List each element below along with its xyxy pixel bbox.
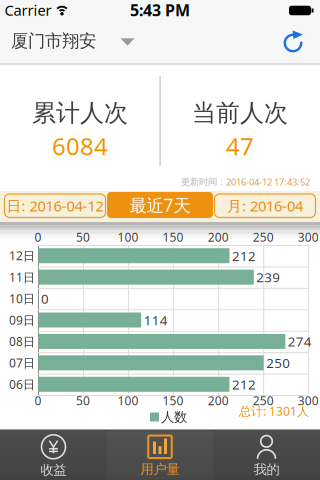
staticText: 0	[34, 229, 41, 245]
staticText: 月: 2016-04	[227, 196, 303, 215]
button[interactable]: 最近7天	[107, 189, 213, 220]
button[interactable]: 收益	[0, 431, 106, 480]
staticText: 2016-04-12 17:43:52	[226, 176, 310, 188]
staticText: 200	[208, 392, 229, 408]
staticText: 150	[163, 229, 184, 245]
staticText: 200	[208, 229, 229, 245]
staticText: 212	[232, 375, 256, 393]
staticText: 150	[163, 392, 184, 408]
staticText: 0	[41, 290, 49, 307]
button[interactable]: 厦门市翔安	[12, 20, 144, 62]
staticText: 用户量	[140, 461, 179, 477]
staticText: 更新时间：	[181, 176, 226, 188]
staticText: 收益	[40, 462, 66, 478]
staticText: 我的	[253, 461, 279, 478]
button[interactable]: 日: 2016-04-12	[3, 190, 107, 221]
staticText: 100	[118, 392, 139, 408]
staticText: 239	[256, 268, 280, 286]
staticText: 250	[266, 354, 290, 372]
staticText: 累计人次	[32, 98, 128, 128]
staticText: 日: 2016-04-12	[6, 196, 103, 215]
button[interactable]: 月: 2016-04	[213, 190, 317, 221]
staticText: 11日	[9, 269, 35, 285]
staticText: 47	[226, 130, 254, 162]
staticText: 07日	[9, 355, 35, 371]
button[interactable]: 刷新	[282, 29, 306, 55]
staticText: 12日	[9, 248, 35, 264]
staticText: 50	[76, 392, 90, 408]
staticText: 274	[288, 333, 312, 350]
staticText: 100	[118, 229, 139, 245]
staticText: 0	[34, 392, 41, 408]
staticText: 09日	[9, 312, 35, 328]
staticText: 5:43 PM	[130, 0, 190, 21]
staticText: 最近7天	[129, 193, 190, 216]
staticText: 114	[144, 311, 168, 329]
staticText: 厦门市翔安	[11, 30, 96, 52]
staticText: 06日	[9, 376, 35, 392]
staticText: 250	[253, 392, 274, 408]
staticText: 人数	[161, 409, 187, 425]
staticText: 300	[298, 392, 319, 408]
staticText: 212	[232, 247, 256, 265]
staticText: 总计: 1301人	[239, 403, 309, 419]
staticText: 08日	[9, 333, 35, 349]
staticText: 300	[298, 229, 319, 245]
staticText: 6084	[52, 130, 108, 162]
staticText: 250	[253, 229, 274, 245]
staticText: 10日	[9, 291, 35, 306]
staticText: 50	[76, 229, 90, 245]
button[interactable]: 我的	[213, 431, 319, 480]
staticText: 当前人次	[192, 98, 288, 128]
staticText: Carrier	[4, 0, 51, 20]
button[interactable]: 用户量	[107, 431, 213, 480]
